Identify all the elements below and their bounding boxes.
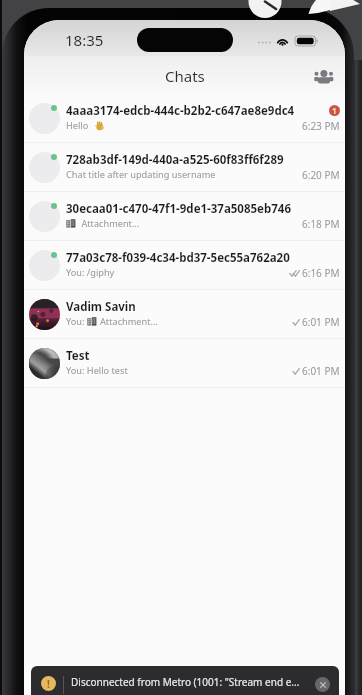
staticText: 6:16 PM [302,266,340,280]
button[interactable]: 30ecaa01-c470-47f1-9de1-37a5085eb746 [24,192,345,241]
button[interactable]: Dismiss [315,677,330,692]
button[interactable]: Vadim Savin [24,290,345,339]
staticText: You: /giphy [66,266,115,279]
staticText: 30ecaa01-c470-47f1-9de1-37a5085eb746 [66,201,291,217]
staticText: 6:01 PM [302,364,340,378]
staticText: Attachment... [100,315,158,328]
staticText: Chat title after updating username [66,168,216,181]
staticText: Vadim Savin [66,299,136,315]
button[interactable]: ! [31,666,339,695]
staticText: ! [47,677,50,691]
button[interactable]: 728ab3df-149d-440a-a525-60f83ff6f289 [24,143,345,192]
button[interactable]: 4aaa3174-edcb-444c-b2b2-c647ae8e9dc4 [24,94,345,143]
staticText: You: Hello test [66,364,128,377]
button[interactable]: Test [24,339,345,388]
staticText: 6:20 PM [302,168,340,182]
staticText: Attachment... [79,217,140,230]
staticText: 728ab3df-149d-440a-a525-60f83ff6f289 [66,152,284,168]
staticText: 4aaa3174-edcb-444c-b2b2-c647ae8e9dc4 [66,103,295,119]
staticText: 1 [332,105,337,116]
staticText: Test [66,348,90,364]
staticText: 6:23 PM [302,119,340,133]
staticText: 6:18 PM [302,217,340,231]
staticText: 18:35 [65,30,104,50]
button[interactable]: New group chat [310,62,338,90]
staticText: 77a03c78-f039-4c34-bd37-5ec55a762a20 [66,250,290,266]
staticText: Chats [165,66,205,86]
staticText: 6:01 PM [302,315,340,329]
button[interactable]: 77a03c78-f039-4c34-bd37-5ec55a762a20 [24,241,345,290]
staticText: Hello [66,119,91,132]
staticText: Disconnected from Metro (1001: "Stream e… [71,675,306,689]
staticText: You: [66,315,87,328]
